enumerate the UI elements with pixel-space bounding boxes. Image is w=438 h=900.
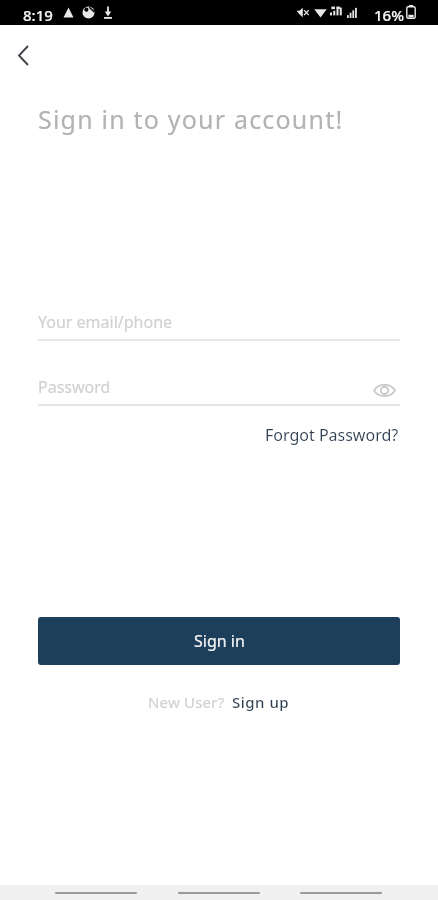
staticText: Your email/phone: [38, 311, 173, 333]
staticText: Forgot Password?: [265, 424, 399, 446]
button[interactable]: Show password: [370, 376, 399, 405]
staticText: New User?: [148, 692, 225, 712]
staticText: Sign in: [194, 630, 245, 652]
button[interactable]: Recents: [280, 885, 402, 900]
button[interactable]: Sign in: [38, 617, 400, 665]
staticText: Sign up: [232, 692, 290, 712]
button[interactable]: Back: [3, 35, 43, 75]
staticText: 8:19: [23, 5, 53, 25]
button[interactable]: Forgot Password?: [265, 424, 399, 446]
staticText: Sign in to your account!: [38, 102, 344, 136]
staticText: 16%: [374, 5, 404, 25]
button[interactable]: Sign up: [232, 692, 290, 712]
button[interactable]: Home: [158, 885, 280, 900]
staticText: Password: [38, 376, 111, 398]
button[interactable]: Back: [35, 885, 157, 900]
